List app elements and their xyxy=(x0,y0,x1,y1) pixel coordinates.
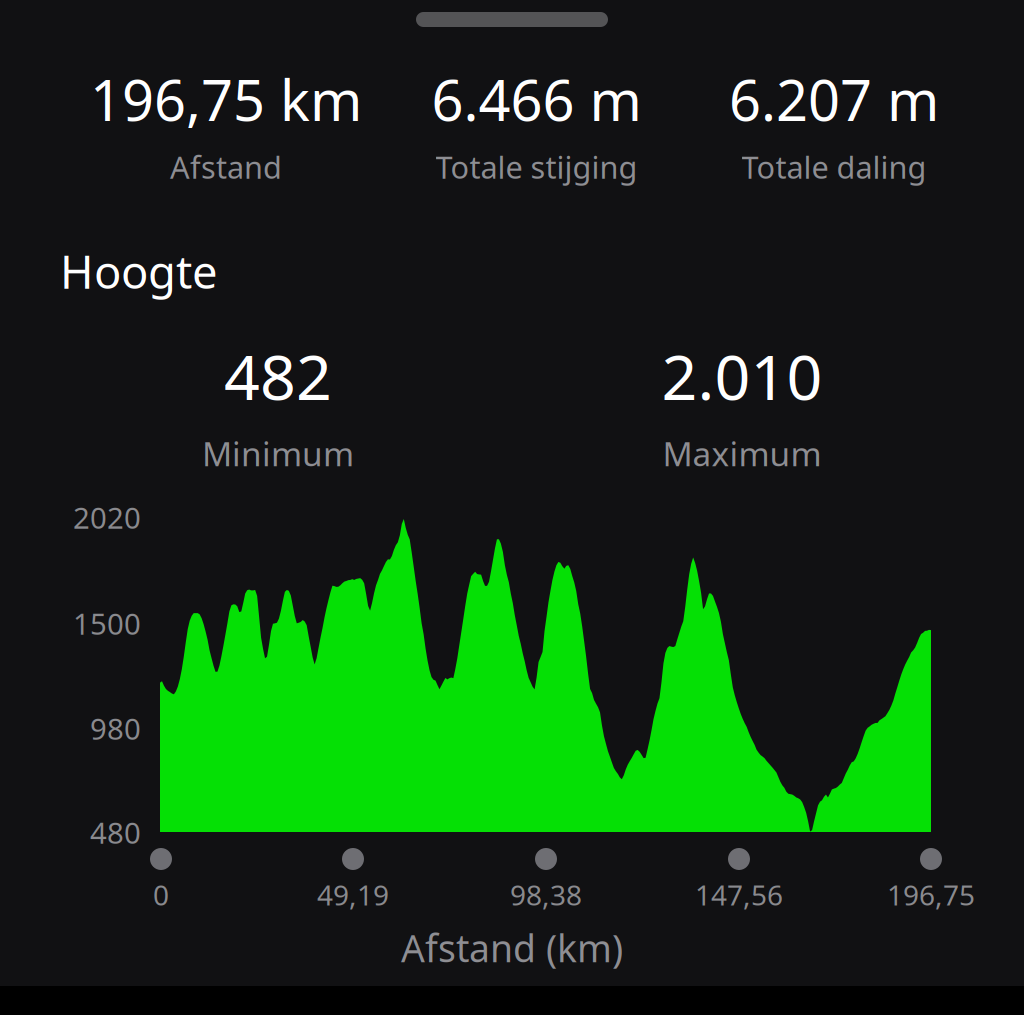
staticText: Minimum xyxy=(202,431,354,475)
staticText: 2.010 xyxy=(661,334,822,417)
staticText: 480 xyxy=(90,813,141,852)
staticText: 49,19 xyxy=(317,876,389,913)
staticText: 980 xyxy=(90,709,141,748)
staticText: Afstand (km) xyxy=(401,923,623,973)
staticText: Totale daling xyxy=(741,146,926,187)
staticText: 147,56 xyxy=(695,876,783,913)
staticText: Totale stijging xyxy=(435,146,637,187)
staticText: 6.466 m xyxy=(431,62,641,136)
button[interactable]: Sheet drag handle xyxy=(376,0,648,39)
staticText: 2020 xyxy=(73,498,141,537)
staticText: 196,75 km xyxy=(90,62,362,136)
staticText: 98,38 xyxy=(510,876,582,913)
staticText: 482 xyxy=(224,334,332,417)
staticText: 1500 xyxy=(73,604,141,643)
staticText: 196,75 xyxy=(887,876,975,913)
staticText: Hoogte xyxy=(60,241,218,301)
staticText: 0 xyxy=(153,876,169,913)
staticText: 6.207 m xyxy=(729,62,939,136)
staticText: Afstand xyxy=(170,146,282,187)
staticText: Maximum xyxy=(662,431,821,475)
